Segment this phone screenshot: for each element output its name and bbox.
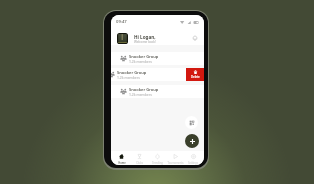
staticText: Snooker Group xyxy=(129,87,159,92)
staticText: Snooker Group xyxy=(117,70,147,75)
staticText: Snooker Group xyxy=(129,54,159,59)
button[interactable]: Delete xyxy=(186,68,204,81)
staticText: Clubs xyxy=(136,161,143,165)
button[interactable]: Snooker Group xyxy=(111,68,192,81)
button[interactable]: Scan QR code xyxy=(185,116,198,129)
staticText: Trending xyxy=(152,161,163,165)
staticText: Welcome back! xyxy=(134,40,156,44)
button[interactable]: Home xyxy=(113,151,130,165)
button[interactable]: Snooker Group xyxy=(111,52,204,65)
button[interactable]: Trending xyxy=(148,151,166,165)
button[interactable]: Tournaments xyxy=(166,151,184,165)
staticText: Home xyxy=(118,161,126,165)
staticText: Tournaments xyxy=(167,161,184,165)
staticText: 1.2k members xyxy=(129,59,152,64)
button[interactable]: Notifications xyxy=(191,34,199,42)
staticText: Settings xyxy=(188,161,198,165)
button[interactable]: Add new group xyxy=(185,134,199,148)
staticText: 09:47 xyxy=(116,19,127,25)
staticText: Delete xyxy=(191,75,200,79)
button[interactable]: Snooker Group xyxy=(111,85,204,98)
button[interactable]: Settings xyxy=(184,151,202,165)
button[interactable]: Clubs xyxy=(130,151,148,165)
staticText: Hi Logan, xyxy=(134,34,156,40)
staticText: 1.2k members xyxy=(129,92,152,97)
staticText: 1.2k members xyxy=(117,75,140,80)
